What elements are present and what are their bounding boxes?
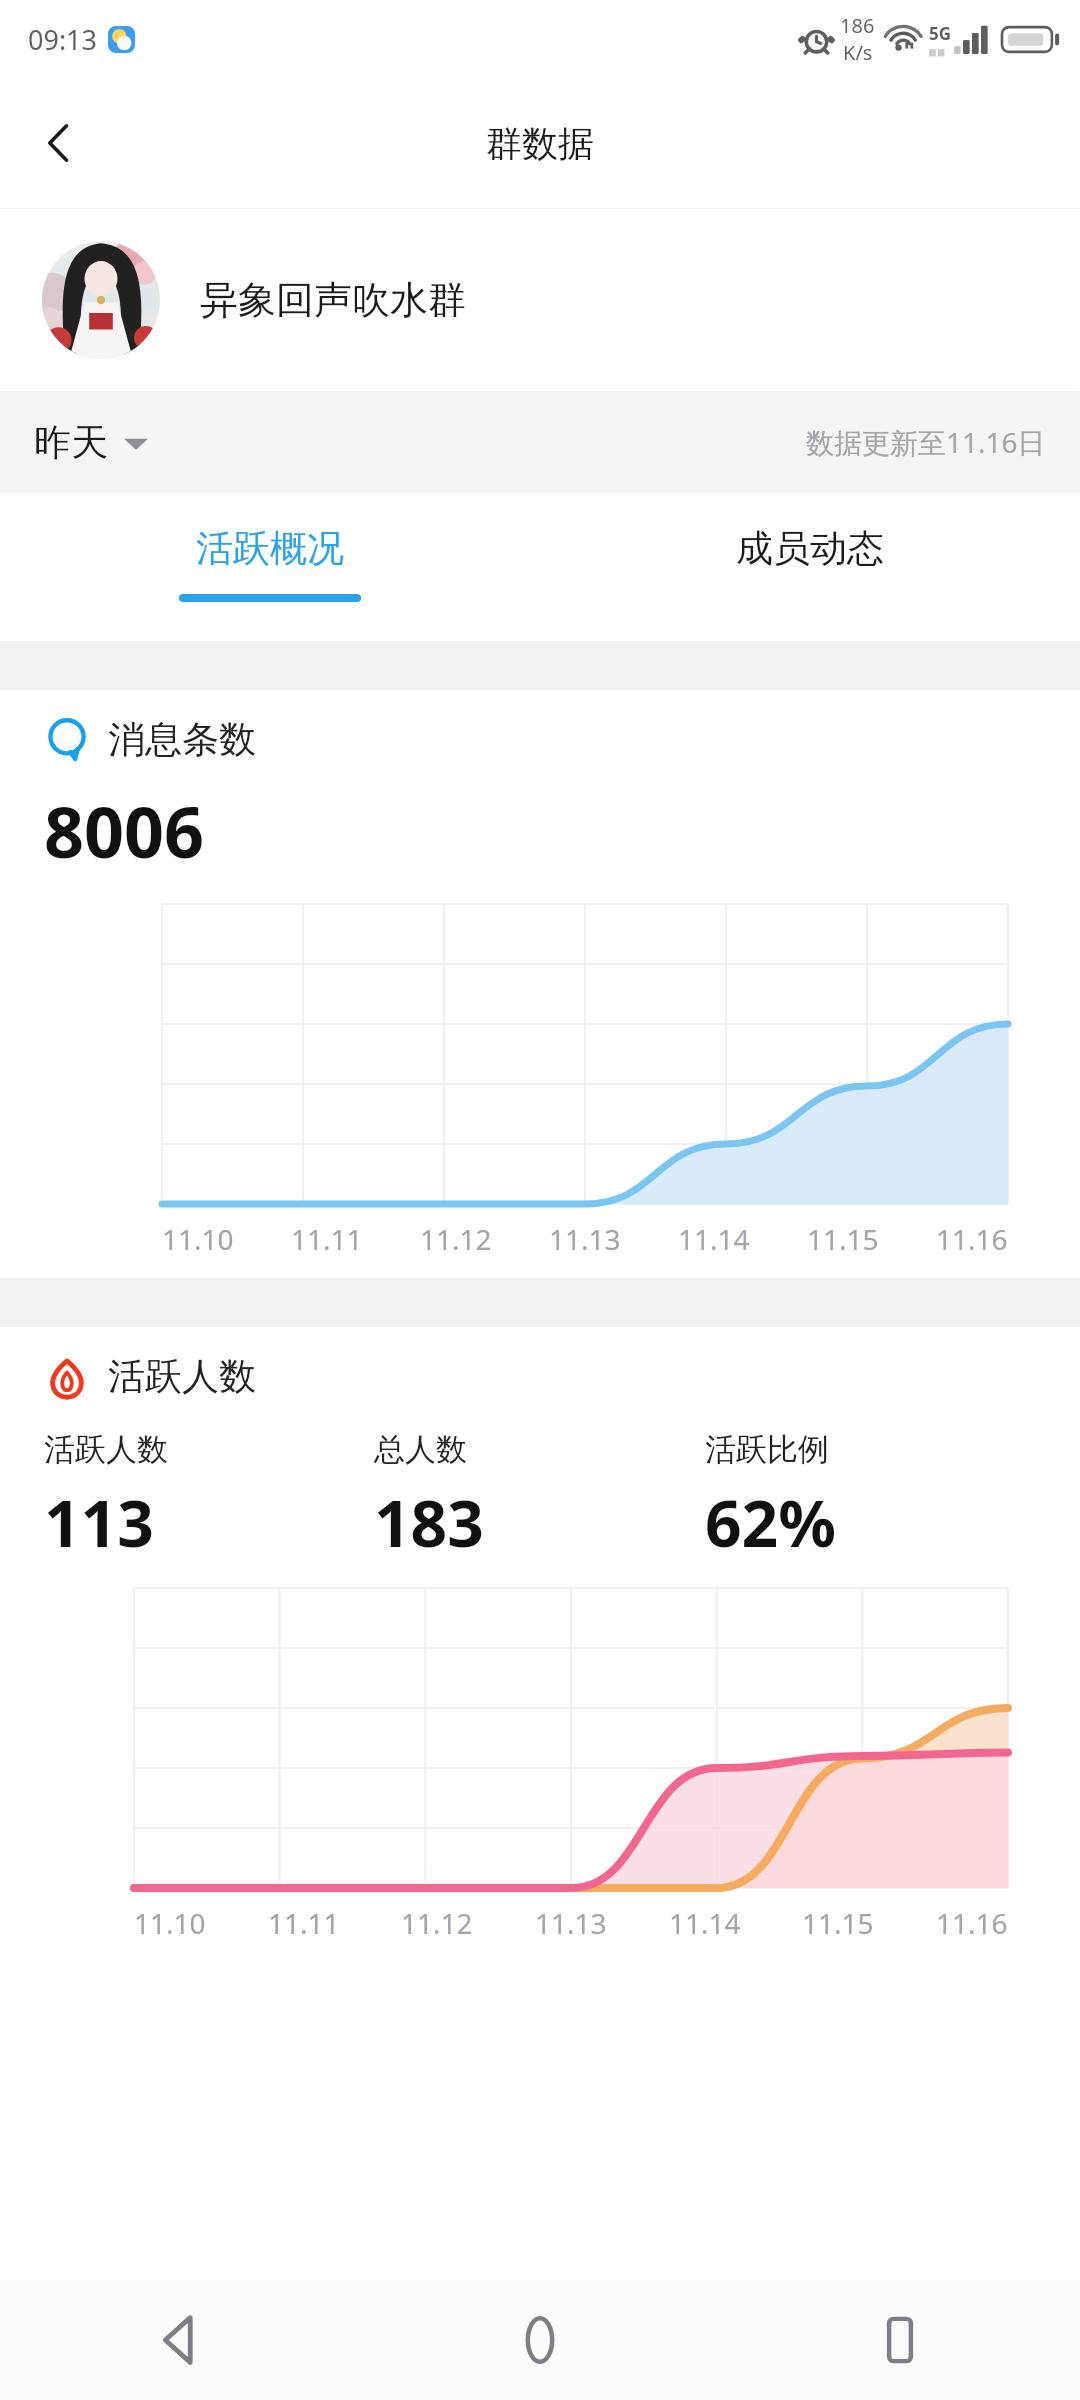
staticText: 11.11 xyxy=(291,1220,363,1258)
staticText: 活跃比例 xyxy=(705,1430,829,1469)
button[interactable]: 成员动态 xyxy=(540,493,1080,641)
staticText: 62% xyxy=(705,1479,836,1566)
staticText: 群数据 xyxy=(486,121,594,166)
button[interactable]: 昨天 xyxy=(30,409,152,476)
staticText: 5G xyxy=(929,22,952,45)
button[interactable]: 异象回声吹水群 xyxy=(0,209,1080,391)
staticText: 昨天 xyxy=(34,419,108,466)
staticText: 11.10 xyxy=(162,1220,234,1258)
staticText: 11.14 xyxy=(669,1904,741,1942)
button[interactable]: Recents xyxy=(720,2280,1080,2400)
button[interactable]: Home xyxy=(360,2280,720,2400)
staticText: 11.11 xyxy=(268,1904,340,1942)
staticText: 11.13 xyxy=(535,1904,607,1942)
button[interactable]: 活跃概况 xyxy=(0,493,540,641)
staticText: 11.15 xyxy=(807,1220,879,1258)
staticText: 11.14 xyxy=(678,1220,750,1258)
button[interactable]: Back xyxy=(14,98,104,188)
staticText: K/s xyxy=(843,39,873,66)
button[interactable]: Back xyxy=(0,2280,360,2400)
staticText: 11.12 xyxy=(401,1904,473,1942)
staticText: 09:13 xyxy=(28,21,98,58)
staticText: 11.15 xyxy=(802,1904,874,1942)
staticText: 消息条数 xyxy=(108,716,256,763)
staticText: 8006 xyxy=(44,783,205,878)
staticText: 11.16 xyxy=(936,1220,1008,1258)
staticText: 186 xyxy=(840,12,875,39)
staticText: 11.12 xyxy=(420,1220,492,1258)
staticText: 11.10 xyxy=(134,1904,206,1942)
staticText: 11.13 xyxy=(549,1220,621,1258)
staticText: 总人数 xyxy=(374,1430,467,1469)
staticText: 183 xyxy=(374,1479,484,1566)
staticText: 异象回声吹水群 xyxy=(200,276,466,324)
staticText: 活跃概况 xyxy=(196,525,344,572)
staticText: 11.16 xyxy=(936,1904,1008,1942)
staticText: 成员动态 xyxy=(736,525,884,572)
staticText: 活跃人数 xyxy=(108,1353,256,1400)
staticText: 数据更新至11.16日 xyxy=(806,423,1046,461)
staticText: 活跃人数 xyxy=(44,1430,168,1469)
staticText: 113 xyxy=(44,1479,154,1566)
